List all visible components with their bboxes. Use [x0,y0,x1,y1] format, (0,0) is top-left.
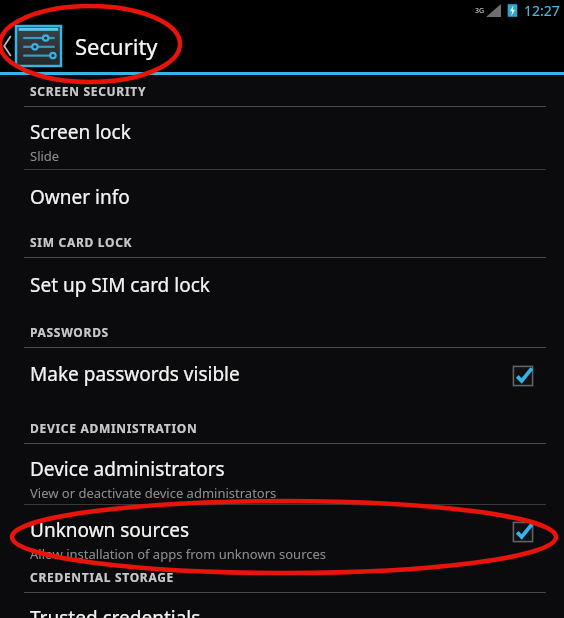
staticText: Device administrators [30,456,225,482]
staticText: DEVICE ADMINISTRATION [30,420,198,436]
staticText: SCREEN SECURITY [30,83,147,99]
button[interactable]: Unknown sources [0,505,564,563]
staticText: Screen lock [30,119,131,145]
button[interactable]: Set up SIM card lock [0,258,564,314]
staticText: Security [75,31,158,61]
button[interactable]: Owner info [0,170,564,226]
button[interactable]: Back [0,20,564,72]
other: Back [0,36,16,56]
staticText: Unknown sources [30,517,189,543]
staticText: SIM CARD LOCK [30,234,133,250]
staticText: 12:27 [524,1,560,20]
button[interactable]: Device administrators [0,444,564,504]
staticText: Owner info [30,184,130,210]
staticText: CREDENTIAL STORAGE [30,569,175,585]
staticText: Set up SIM card lock [30,272,210,298]
button[interactable]: Trusted credentials [0,593,564,618]
staticText: Slide [30,147,60,165]
button[interactable]: Screen lock [0,107,564,169]
staticText: Allow installation of apps from unknown … [30,545,327,563]
button[interactable]: Toggle Make passwords visible [510,363,536,389]
button[interactable]: Toggle Unknown sources [510,519,536,545]
staticText: View or deactivate device administrators [30,484,277,502]
staticText: 3G [475,6,485,16]
staticText: Trusted credentials [30,605,201,618]
button[interactable]: Make passwords visible [0,348,564,406]
staticText: Make passwords visible [30,361,240,387]
staticText: PASSWORDS [30,324,109,340]
